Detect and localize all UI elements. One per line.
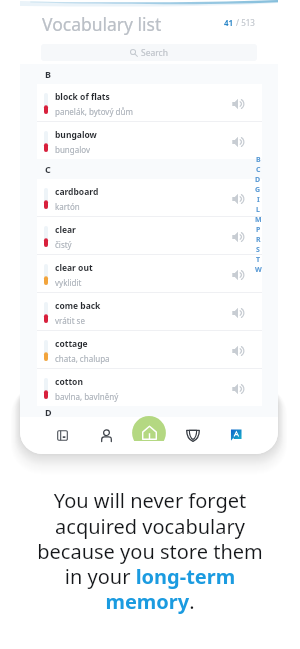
staticText: R bbox=[256, 235, 261, 245]
button[interactable]: bungalow bbox=[37, 122, 262, 159]
button[interactable]: Profile bbox=[89, 419, 123, 453]
button[interactable]: Play bungalow bbox=[228, 131, 250, 153]
staticText: kartón bbox=[55, 201, 80, 212]
staticText: clear bbox=[55, 224, 76, 236]
button[interactable]: clear bbox=[37, 217, 262, 254]
staticText: G bbox=[255, 185, 261, 195]
staticText: clear out bbox=[55, 262, 93, 274]
staticText: B bbox=[45, 68, 51, 80]
button[interactable]: Play come back bbox=[228, 302, 250, 324]
button[interactable]: Play cardboard bbox=[228, 188, 250, 210]
staticText: bungalov bbox=[55, 144, 91, 155]
button[interactable]: Play cotton bbox=[228, 378, 250, 400]
staticText: D bbox=[45, 406, 52, 417]
staticText: 41 bbox=[224, 17, 234, 28]
button[interactable]: Play block of flats bbox=[228, 93, 250, 115]
staticText: C bbox=[45, 163, 51, 175]
staticText: M bbox=[255, 215, 262, 225]
button[interactable]: clear out bbox=[37, 255, 262, 292]
staticText: B bbox=[256, 155, 261, 165]
button[interactable]: block of flats bbox=[37, 84, 262, 121]
staticText: bavlna, bavlněný bbox=[55, 391, 119, 402]
staticText: P bbox=[256, 225, 261, 235]
button[interactable]: Translate bbox=[219, 419, 253, 453]
button[interactable]: cardboard bbox=[37, 179, 262, 216]
staticText: come back bbox=[55, 300, 101, 312]
staticText: S bbox=[256, 245, 260, 255]
staticText: / 513 bbox=[234, 17, 255, 28]
button[interactable]: cotton bbox=[37, 369, 262, 406]
staticText: You will never forget acquired vocabular… bbox=[14, 487, 286, 614]
button[interactable]: Home bbox=[132, 416, 166, 441]
staticText: T bbox=[256, 255, 261, 265]
staticText: vrátit se bbox=[55, 315, 85, 326]
staticText: cotton bbox=[55, 376, 83, 388]
staticText: block of flats bbox=[55, 91, 110, 103]
staticText: C bbox=[256, 165, 261, 175]
staticText: W bbox=[255, 265, 262, 275]
staticText: L bbox=[256, 205, 260, 215]
staticText: cardboard bbox=[55, 186, 99, 198]
staticText: vyklidit bbox=[55, 277, 82, 288]
button[interactable]: Play clear out bbox=[228, 264, 250, 286]
button[interactable]: Play clear bbox=[228, 226, 250, 248]
button[interactable]: Protection bbox=[176, 419, 210, 453]
staticText: I bbox=[257, 195, 260, 205]
staticText: chata, chalupa bbox=[55, 353, 110, 364]
staticText: D bbox=[255, 175, 261, 185]
button[interactable]: come back bbox=[37, 293, 262, 330]
staticText: panelák, bytový dům bbox=[55, 106, 133, 117]
staticText: Vocabulary list bbox=[42, 12, 162, 36]
staticText: Search bbox=[141, 47, 168, 59]
button[interactable]: Alphabet index bbox=[254, 155, 262, 275]
button[interactable]: Library bbox=[45, 419, 79, 453]
button[interactable]: cottage bbox=[37, 331, 262, 368]
button[interactable]: Play cottage bbox=[228, 340, 250, 362]
button[interactable]: Search bbox=[41, 44, 257, 61]
staticText: bungalow bbox=[55, 129, 97, 141]
staticText: cottage bbox=[55, 338, 88, 350]
staticText: čistý bbox=[55, 239, 72, 250]
